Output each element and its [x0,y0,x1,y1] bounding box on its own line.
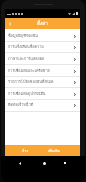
button[interactable]: ติดต่อเจ้าหน้าที่ [5,99,80,111]
staticText: ล้าง [22,148,28,154]
button[interactable]: เพิ่มเติม [43,145,65,156]
staticText: ตั้งค่า [37,20,48,27]
staticText: ข้อมูลบัญชีของฉัน [8,33,38,39]
button[interactable]: การเชื่อมต่ออุปกรณ์อื่น [5,88,80,100]
button[interactable]: ภาษาและการแสดงผล [5,53,80,65]
staticText: รายการโปรดของฉันทั้งหมด [8,79,54,85]
button[interactable]: การเชื่อมต่อและเครือข่าย [5,65,80,77]
button[interactable]: ล้าง [14,145,36,156]
button[interactable]: Back [14,157,26,169]
button[interactable]: Recent apps [59,157,71,169]
button[interactable]: รายการโปรดของฉันทั้งหมด [5,76,80,88]
button[interactable]: ข้อมูลบัญชีของฉัน [5,30,80,42]
button[interactable]: การแจ้งเตือนข้อความ [5,41,80,53]
button[interactable]: Back [5,19,15,29]
staticText: การเชื่อมต่ออุปกรณ์อื่น [8,91,46,97]
button[interactable]: Home [38,157,50,169]
staticText: เพิ่มเติม [48,148,60,154]
staticText: การแจ้งเตือนข้อความ [8,44,44,50]
staticText: ภาษาและการแสดงผล [8,56,45,62]
staticText: การเชื่อมต่อและเครือข่าย [8,68,50,74]
staticText: ติดต่อเจ้าหน้าที่ [8,102,34,108]
